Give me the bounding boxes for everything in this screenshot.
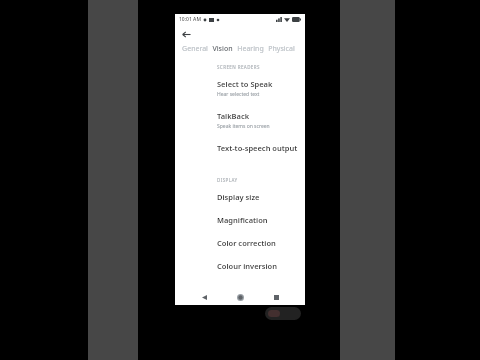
staticText: Text-to-speech output: [217, 143, 298, 153]
button[interactable]: Back: [197, 290, 211, 304]
staticText: Speak items on screen: [217, 123, 270, 130]
button[interactable]: Magnification: [175, 208, 305, 231]
button[interactable]: Physical: [268, 44, 295, 54]
staticText: General: [182, 44, 208, 54]
staticText: Color correction: [217, 238, 276, 248]
staticText: 10:01 AM: [179, 16, 201, 23]
staticText: DISPLAY: [217, 177, 238, 183]
button[interactable]: Select to Speak: [175, 72, 305, 104]
staticText: Physical: [268, 44, 295, 54]
button[interactable]: Color correction: [175, 231, 305, 254]
button[interactable]: Home: [233, 290, 247, 304]
button[interactable]: Recent apps: [269, 290, 283, 304]
button[interactable]: TalkBack: [175, 104, 305, 136]
button[interactable]: Back: [179, 27, 193, 41]
button[interactable]: Hearing: [237, 44, 264, 54]
staticText: Display size: [217, 192, 260, 202]
staticText: Colour inversion: [217, 261, 278, 271]
button[interactable]: Colour inversion: [175, 254, 305, 277]
button[interactable]: Vision: [212, 44, 233, 54]
staticText: Hear selected text: [217, 91, 260, 98]
staticText: Select to Speak: [217, 79, 273, 89]
staticText: Hearing: [237, 44, 264, 54]
button[interactable]: General: [182, 44, 208, 54]
staticText: TalkBack: [217, 111, 250, 121]
button[interactable]: Display size: [175, 185, 305, 208]
staticText: Vision: [212, 44, 233, 54]
staticText: Magnification: [217, 215, 268, 225]
button[interactable]: Text-to-speech output: [175, 136, 305, 159]
staticText: SCREEN READERS: [217, 64, 260, 70]
